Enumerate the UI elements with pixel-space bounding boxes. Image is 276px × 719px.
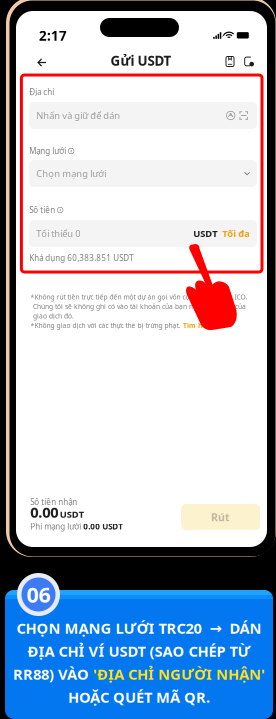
- staticText: Tối thiểu 0: [36, 227, 80, 240]
- button[interactable]: Contacts: [224, 109, 237, 122]
- staticText: USDT: [193, 227, 217, 240]
- button[interactable]: Scan address: [237, 109, 250, 122]
- staticText: Tối đa: [222, 227, 250, 240]
- staticText: HOẶC QUÉT MÃ QR.: [68, 687, 210, 707]
- button[interactable]: Rút: [181, 504, 260, 530]
- staticText: Gửi USDT: [110, 52, 171, 69]
- staticText: Nhấn và giữ để dán: [36, 109, 120, 122]
- staticText: Số tiền: [29, 205, 55, 215]
- button[interactable]: Tìm hiểu: [183, 321, 212, 330]
- staticText: RR88) VÀO: [13, 664, 93, 684]
- staticText: Phí mạng lưới: [30, 521, 81, 532]
- button[interactable]: Scan QR code: [241, 54, 257, 68]
- staticText: CHỌN MẠNG LƯỚI TRC20 → DÁN: [16, 618, 261, 638]
- staticText: ĐỊA CHỈ VÍ USDT (SAO CHÉP TỪ: [27, 641, 250, 661]
- staticText: Khả dụng 60,383.851 USDT: [29, 253, 133, 263]
- staticText: 2:17: [39, 27, 67, 44]
- staticText: Địa chỉ: [29, 87, 54, 97]
- staticText: 0.00 USDT: [83, 521, 123, 532]
- button[interactable]: Back: [31, 55, 53, 69]
- button[interactable]: Chọn mạng lưới: [29, 160, 257, 187]
- staticText: 0.00: [30, 502, 58, 522]
- staticText: Chọn mạng lưới: [36, 167, 106, 180]
- staticText: *Không rút tiền trực tiếp đến một dự án …: [30, 293, 247, 301]
- staticText: 'ĐỊA CHỈ NGƯỜI NHẬN': [93, 664, 265, 684]
- button[interactable]: Address book: [222, 54, 238, 68]
- staticText: Mạng lưới: [29, 146, 66, 156]
- staticText: 06: [26, 580, 50, 609]
- staticText: Chúng tôi sẽ không ghi có vào tài khoản …: [33, 302, 246, 311]
- staticText: Rút: [211, 510, 230, 524]
- staticText: giao dịch đó.: [33, 312, 74, 320]
- staticText: Tìm hiểu: [183, 321, 212, 330]
- staticText: *Không giao dịch với các thực thể bị trừ…: [30, 321, 180, 330]
- staticText: Số tiền nhận: [30, 497, 77, 507]
- staticText: USDT: [60, 508, 84, 520]
- button[interactable]: Tối đa: [217, 227, 250, 240]
